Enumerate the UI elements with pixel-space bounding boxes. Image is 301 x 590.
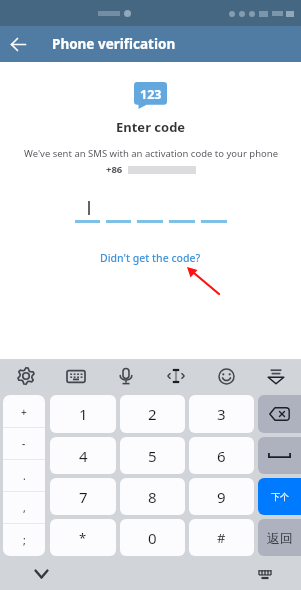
button[interactable]: Space [258,437,301,474]
button[interactable]: 9 [189,478,254,515]
button[interactable]: # [189,519,254,556]
staticText: 下个 [271,491,289,502]
button[interactable]: 2 [120,395,185,433]
button[interactable]: 4 [50,437,116,474]
staticText: * [79,529,87,547]
staticText: +86 [106,163,123,176]
button[interactable]: Voice input [101,359,151,393]
button[interactable]: 3 [189,395,254,433]
button[interactable]: , [3,492,45,524]
staticText: ; [23,533,26,547]
staticText: , [23,501,26,515]
staticText: 2 [148,404,157,424]
staticText: - [22,437,26,451]
staticText: 返回 [267,530,293,546]
staticText: + [21,405,27,419]
staticText: We've sent an SMS with an activation cod… [24,147,278,160]
button[interactable]: 8 [120,478,185,515]
button[interactable]: Keyboard layout [250,559,280,589]
staticText: . [23,469,26,483]
button[interactable]: Navigate back [0,26,36,62]
button[interactable]: 下个 [258,478,301,515]
staticText: 123 [140,86,162,103]
button[interactable]: 7 [50,478,116,515]
staticText: 4 [79,446,88,466]
button[interactable]: . [3,460,45,492]
staticText: 1 [79,404,88,424]
button[interactable]: + [3,395,45,428]
staticText: 3 [217,404,226,424]
button[interactable]: 0 [120,519,185,556]
button[interactable]: ; [3,524,45,556]
button[interactable]: 返回 [258,519,301,556]
button[interactable]: Input settings [0,359,51,393]
button[interactable]: * [50,519,116,556]
button[interactable]: 1 [50,395,116,433]
button[interactable]: Hide keyboard [251,359,301,393]
button[interactable]: Emoji [201,359,251,393]
button[interactable]: Collapse keyboard [26,559,56,589]
button[interactable]: Backspace [258,395,301,433]
staticText: 5 [148,446,157,466]
button[interactable]: 5 [120,437,185,474]
button[interactable]: Switch keyboard [51,359,101,393]
button[interactable]: Didn't get the code? [96,250,205,266]
button[interactable]: - [3,428,45,460]
staticText: Phone verification [52,35,176,53]
staticText: # [217,529,226,547]
staticText: 9 [217,487,226,507]
staticText: 0 [148,528,157,548]
staticText: 7 [79,487,88,507]
button[interactable]: Move cursor [151,359,201,393]
staticText: 6 [217,446,226,466]
staticText: Enter code [116,118,186,136]
staticText: 8 [148,487,157,507]
button[interactable]: 6 [189,437,254,474]
